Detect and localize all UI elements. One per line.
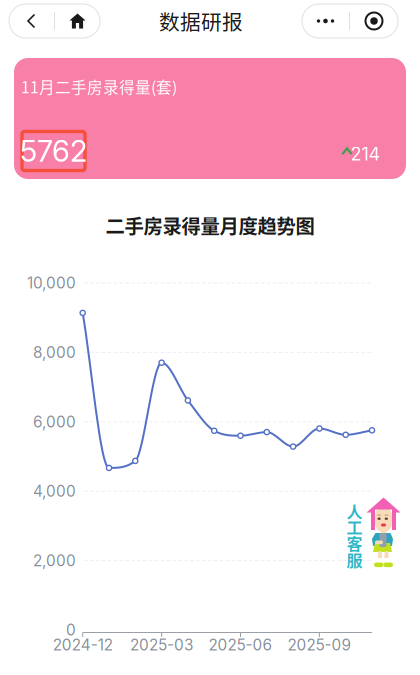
- staticText: 服: [346, 548, 362, 571]
- staticText: 2025-03: [130, 636, 193, 654]
- staticText: 5762: [20, 133, 87, 169]
- staticText: 4,000: [33, 482, 76, 500]
- staticText: 2,000: [33, 551, 76, 570]
- staticText: 数据研报: [159, 6, 243, 36]
- staticText: 214: [350, 143, 380, 165]
- staticText: 10,000: [27, 274, 76, 292]
- staticText: 工: [346, 515, 362, 538]
- staticText: 8,000: [33, 343, 76, 362]
- staticText: 2024-12: [53, 636, 113, 654]
- button[interactable]: 更多 关闭: [302, 4, 398, 38]
- staticText: 2025-09: [287, 636, 351, 654]
- staticText: 客: [346, 531, 362, 555]
- staticText: 11月二手房录得量(套): [21, 75, 177, 98]
- staticText: 二手房录得量月度趋势图: [105, 211, 314, 239]
- staticText: 人: [346, 499, 362, 522]
- staticText: 2025-06: [208, 636, 272, 654]
- button[interactable]: 人工客服: [346, 496, 405, 568]
- staticText: 6,000: [33, 412, 76, 431]
- staticText: 0: [66, 621, 76, 639]
- button[interactable]: 返回 主页: [9, 4, 100, 38]
